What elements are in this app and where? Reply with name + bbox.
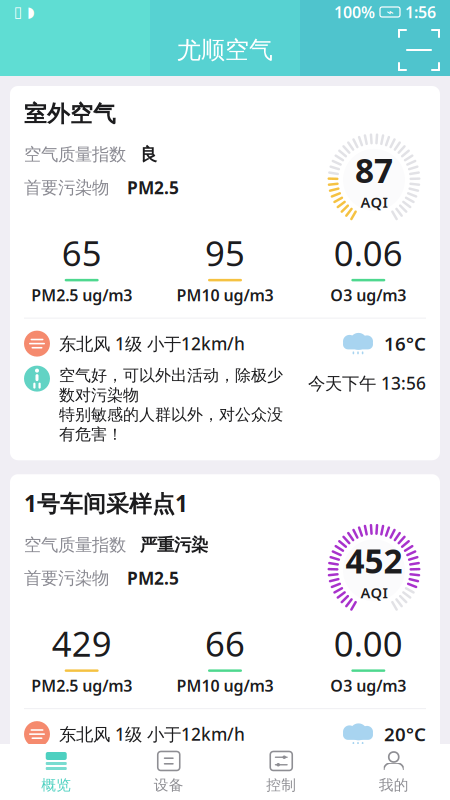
staticText: AQI [360, 583, 387, 602]
staticText: PM2.5 ug/m3 [31, 675, 132, 696]
staticText: 良 [140, 144, 157, 165]
staticText: ⌁ [386, 5, 393, 19]
staticText: 空气质量指数 [24, 144, 126, 165]
staticText: 控制 [266, 776, 296, 794]
staticText: PM2.5 ug/m3 [31, 284, 132, 306]
staticText: 东北风 1级 小于12km/h [59, 723, 245, 746]
staticText: 今天下午 13:56 [308, 762, 426, 785]
button[interactable]: 概览 [0, 743, 112, 800]
staticText: AQI [360, 192, 387, 212]
button[interactable]: 控制 [225, 743, 337, 800]
staticText: PM2.5 [127, 176, 179, 199]
button[interactable]: 扫一扫 [400, 31, 438, 69]
staticText: 0.00 [334, 620, 403, 666]
staticText: ▯ [14, 4, 22, 20]
staticText: 95 [205, 230, 245, 276]
staticText: 尤顺空气 [177, 35, 273, 65]
staticText: 空气好，可以外出活动，除极少数对污染物 特别敏感的人群以外，对公众没有危害！ [59, 756, 283, 800]
staticText: 1号车间采样点1 [24, 488, 188, 518]
staticText: 1:56 [405, 1, 436, 23]
staticText: 概览 [41, 776, 71, 794]
staticText: 16°C [384, 331, 426, 356]
button[interactable]: 设备 [112, 743, 225, 800]
staticText: 100% [334, 1, 375, 23]
staticText: 东北风 1级 小于12km/h [59, 332, 245, 355]
staticText: O3 ug/m3 [330, 675, 406, 696]
staticText: O3 ug/m3 [330, 284, 406, 306]
staticText: 我的 [379, 776, 409, 794]
staticText: 设备 [154, 776, 184, 794]
staticText: 87 [355, 148, 393, 192]
staticText: PM10 ug/m3 [176, 675, 273, 696]
staticText: ◗ [27, 4, 35, 20]
staticText: 今天下午 13:56 [308, 372, 426, 395]
staticText: 65 [62, 230, 102, 276]
staticText: 首要污染物 [24, 567, 109, 589]
staticText: PM10 ug/m3 [176, 284, 273, 306]
staticText: 0.06 [334, 230, 403, 276]
button[interactable]: 我的 [337, 743, 450, 800]
staticText: 429 [52, 620, 112, 666]
staticText: 首要污染物 [24, 177, 109, 198]
staticText: 严重污染 [140, 534, 208, 556]
staticText: PM2.5 [127, 567, 179, 590]
staticText: 452 [345, 538, 402, 583]
staticText: 66 [205, 620, 245, 666]
staticText: 20°C [384, 722, 426, 746]
staticText: 室外空气 [24, 100, 116, 128]
staticText: 空气好，可以外出活动，除极少数对污染物 特别敏感的人群以外，对公众没有危害！ [59, 366, 283, 444]
staticText: 空气质量指数 [24, 534, 126, 556]
